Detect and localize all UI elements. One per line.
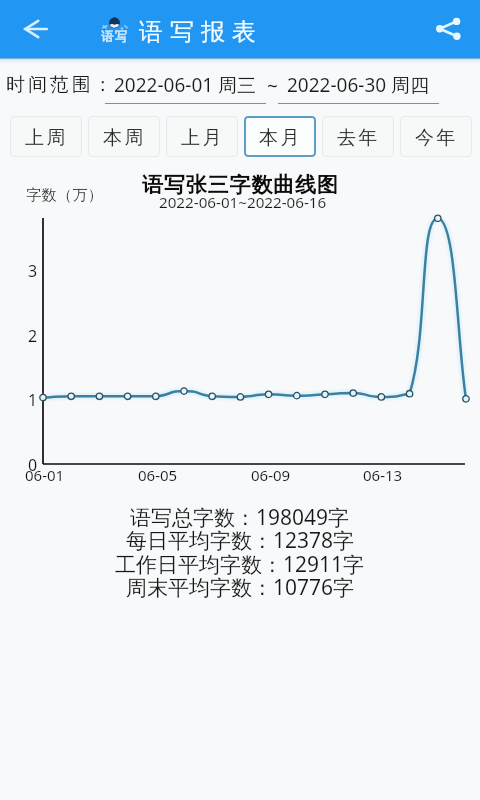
staticText: 06-01 (25, 465, 65, 485)
staticText: 本周 (103, 126, 147, 150)
button[interactable]: 本月 (244, 116, 316, 157)
staticText: ~ (267, 73, 278, 99)
button[interactable]: Back (12, 5, 60, 53)
button[interactable]: 本周 (88, 116, 160, 157)
staticText: 2022-06-01 周三 (114, 72, 257, 98)
staticText: 06-09 (251, 465, 291, 485)
staticText: 语写 (101, 29, 130, 45)
staticText: 语写报表 (139, 17, 263, 47)
staticText: 0 (28, 454, 38, 472)
staticText: 去年 (337, 126, 381, 150)
button[interactable]: 上周 (10, 116, 82, 157)
staticText: 周末平均字数：10776字 (126, 573, 355, 602)
button[interactable]: 上月 (166, 116, 238, 157)
staticText: 字数（万） (26, 186, 103, 205)
button[interactable]: 今年 (400, 116, 472, 157)
staticText: 06-05 (138, 465, 178, 485)
staticText: 工作日平均字数：12911字 (115, 550, 365, 579)
button[interactable]: 去年 (322, 116, 394, 157)
staticText: 每日平均字数：12378字 (126, 526, 355, 555)
staticText: 上周 (25, 126, 69, 150)
staticText: 3 (28, 260, 38, 278)
button[interactable]: 2022-06-01 周三 (105, 65, 266, 104)
button[interactable]: 2022-06-30 周四 (278, 65, 439, 104)
staticText: 2022-06-01~2022-06-16 (159, 192, 327, 213)
staticText: 本月 (259, 126, 303, 150)
staticText: 1 (28, 389, 38, 407)
staticText: 2022-06-30 周四 (287, 72, 430, 98)
staticText: 时间范围： (6, 73, 116, 97)
staticText: 语写总字数：198049字 (130, 503, 350, 532)
staticText: 06-13 (363, 465, 403, 485)
staticText: 语写张三字数曲线图 (142, 172, 339, 198)
button[interactable]: Share (427, 7, 471, 51)
staticText: 上月 (181, 126, 225, 150)
staticText: 今年 (415, 126, 459, 150)
staticText: 2 (28, 325, 38, 343)
